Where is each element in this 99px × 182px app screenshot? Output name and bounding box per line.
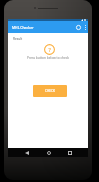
- staticText: ?: [48, 46, 51, 54]
- staticText: Press button below to check: [8, 56, 88, 60]
- staticText: Result: [13, 37, 23, 41]
- button[interactable]: Back: [22, 148, 31, 157]
- button[interactable]: Info: [74, 23, 82, 31]
- button[interactable]: Recents: [65, 148, 74, 157]
- button[interactable]: Home: [44, 148, 53, 157]
- staticText: MHL Checker: [12, 25, 34, 30]
- button[interactable]: More options: [82, 22, 88, 32]
- button[interactable]: CHECK: [33, 85, 67, 97]
- staticText: CHECK: [45, 89, 55, 93]
